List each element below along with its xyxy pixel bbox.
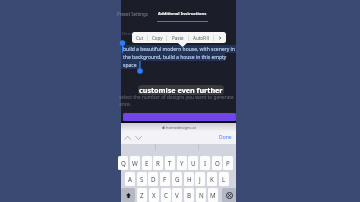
- button[interactable]: AutoFill: [189, 32, 213, 43]
- staticText: J: [199, 175, 201, 183]
- staticText: F: [163, 175, 167, 183]
- staticText: Preset Settings: [117, 11, 148, 17]
- staticText: Done: [219, 134, 232, 141]
- staticText: H: [187, 175, 192, 183]
- staticText: R: [156, 159, 160, 167]
- staticText: W: [132, 159, 138, 167]
- button[interactable]: M: [208, 188, 218, 202]
- staticText: B: [187, 191, 192, 199]
- staticText: homedesigns.ai: [166, 125, 196, 130]
- button[interactable]: O: [212, 156, 222, 170]
- staticText: U: [191, 159, 196, 167]
- staticText: Cut: [136, 35, 144, 41]
- staticText: K: [210, 175, 214, 183]
- staticText: build a beautiful modern house, with sce…: [123, 46, 235, 53]
- staticText: Paste: [172, 35, 184, 41]
- button[interactable]: Y: [177, 156, 187, 170]
- button[interactable]: N: [196, 188, 206, 202]
- button[interactable]: Copy: [148, 32, 166, 43]
- button[interactable]: Backspace: [222, 188, 236, 202]
- button[interactable]: P: [223, 156, 233, 170]
- button[interactable]: K: [207, 172, 217, 186]
- button[interactable]: Preset Settings: [117, 11, 148, 17]
- staticText: Copy: [152, 35, 163, 41]
- staticText: select the number of designs you want to…: [119, 94, 234, 101]
- button[interactable]: J: [195, 172, 205, 186]
- staticText: O: [215, 159, 220, 167]
- staticText: Additional Instructions: [158, 11, 207, 17]
- button[interactable]: V: [172, 188, 182, 202]
- button[interactable]: Q: [118, 156, 128, 170]
- button[interactable]: R: [153, 156, 163, 170]
- staticText: G: [175, 175, 180, 183]
- staticText: D: [151, 175, 156, 183]
- button[interactable]: D: [148, 172, 158, 186]
- button[interactable]: Cut: [132, 32, 147, 43]
- button[interactable]: H: [184, 172, 194, 186]
- staticText: Z: [140, 191, 144, 199]
- button[interactable]: [123, 113, 236, 121]
- button[interactable]: C: [161, 188, 171, 202]
- staticText: Q: [121, 159, 126, 167]
- button[interactable]: T: [165, 156, 175, 170]
- staticText: S: [140, 175, 144, 183]
- button[interactable]: W: [130, 156, 140, 170]
- button[interactable]: X: [149, 188, 159, 202]
- staticText: I: [204, 159, 207, 167]
- staticText: X: [152, 191, 156, 199]
- button[interactable]: B: [184, 188, 194, 202]
- staticText: the background, build a house in this em…: [123, 54, 227, 61]
- button[interactable]: I: [200, 156, 210, 170]
- button[interactable]: A: [125, 172, 135, 186]
- button[interactable]: More options: [214, 32, 226, 43]
- staticText: M: [210, 191, 216, 199]
- button[interactable]: Additional Instructions: [158, 11, 207, 17]
- button[interactable]: U: [188, 156, 198, 170]
- staticText: T: [168, 159, 172, 167]
- button[interactable]: S: [137, 172, 147, 186]
- staticText: AutoFill: [193, 35, 209, 41]
- staticText: A: [128, 175, 132, 183]
- staticText: Y: [180, 159, 184, 167]
- button[interactable]: Shift: [121, 188, 135, 202]
- button[interactable]: F: [160, 172, 170, 186]
- staticText: V: [175, 191, 179, 199]
- staticText: ance.: [119, 101, 131, 108]
- staticText: customise even further: [139, 85, 223, 95]
- button[interactable]: L: [219, 172, 229, 186]
- button[interactable]: Z: [137, 188, 147, 202]
- button[interactable]: Done: [219, 134, 232, 141]
- staticText: P: [226, 159, 230, 167]
- staticText: C: [164, 191, 168, 199]
- other: Previous and next field: [124, 135, 146, 141]
- staticText: space: [123, 62, 137, 69]
- staticText: E: [145, 159, 149, 167]
- button[interactable]: E: [142, 156, 152, 170]
- staticText: N: [199, 191, 204, 199]
- button[interactable]: G: [172, 172, 182, 186]
- staticText: Description: [122, 31, 145, 37]
- staticText: L: [222, 175, 226, 183]
- button[interactable]: Paste: [167, 32, 188, 43]
